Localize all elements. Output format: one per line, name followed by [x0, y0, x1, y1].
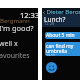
staticText: Bergmann [0, 17, 30, 25]
staticText: Lunch? [44, 15, 66, 24]
staticText: 12:33 [20, 10, 40, 20]
staticText: About 5 min [46, 32, 75, 39]
button[interactable]: About 5 min [45, 32, 80, 39]
staticText: I'm good? [0, 23, 34, 33]
staticText: 12:28 [44, 21, 55, 26]
staticText: ‹ Dieter Bergm [43, 8, 80, 14]
staticText: well x [0, 39, 18, 49]
staticText: can find my [46, 43, 74, 50]
staticText: umbrella [46, 48, 68, 55]
button[interactable]: can find my [45, 42, 80, 56]
staticText: avourites [0, 51, 30, 61]
button[interactable]: ‹ Dieter Bergm [42, 8, 80, 14]
button[interactable]: Emoji [46, 62, 57, 73]
staticText: 13:11 [46, 53, 55, 56]
